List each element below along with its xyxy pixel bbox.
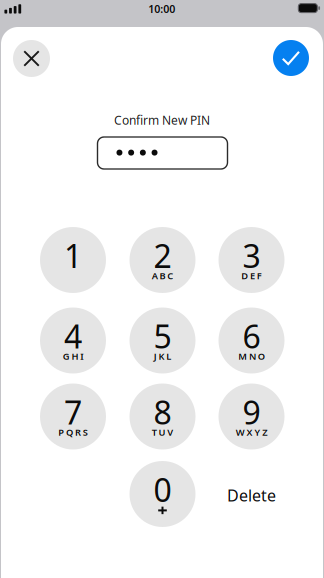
- button[interactable]: 3: [218, 227, 284, 293]
- staticText: 4: [64, 315, 82, 357]
- button[interactable]: 8: [129, 383, 195, 449]
- button[interactable]: 9: [218, 383, 284, 449]
- staticText: 6: [242, 315, 260, 357]
- button[interactable]: 4: [40, 307, 106, 373]
- staticText: PQRS: [58, 426, 88, 438]
- staticText: 1: [64, 234, 82, 277]
- button[interactable]: 2: [129, 227, 195, 293]
- staticText: 5: [153, 315, 171, 357]
- staticText: Confirm New PIN: [114, 112, 210, 128]
- button[interactable]: Delete: [218, 462, 284, 528]
- staticText: 10:00: [148, 2, 175, 16]
- button[interactable]: 7: [40, 383, 106, 449]
- staticText: 9: [242, 391, 260, 433]
- staticText: TUV: [152, 426, 173, 438]
- button[interactable]: 6: [218, 307, 284, 373]
- staticText: 7: [64, 391, 82, 433]
- staticText: 2: [153, 234, 171, 277]
- staticText: ABC: [152, 269, 173, 282]
- staticText: 3: [242, 234, 260, 277]
- staticText: MNO: [238, 350, 265, 362]
- staticText: DEF: [241, 269, 262, 282]
- staticText: Delete: [227, 485, 276, 506]
- staticText: 0: [153, 468, 171, 511]
- staticText: JKL: [154, 350, 171, 362]
- button[interactable]: 5: [129, 307, 195, 373]
- button[interactable]: Confirm: [273, 40, 309, 76]
- staticText: GHI: [63, 350, 83, 362]
- button[interactable]: Close: [13, 40, 50, 77]
- staticText: WXYZ: [236, 426, 267, 438]
- button[interactable]: 1: [40, 227, 106, 293]
- staticText: 8: [153, 391, 171, 433]
- button[interactable]: 0: [129, 461, 195, 527]
